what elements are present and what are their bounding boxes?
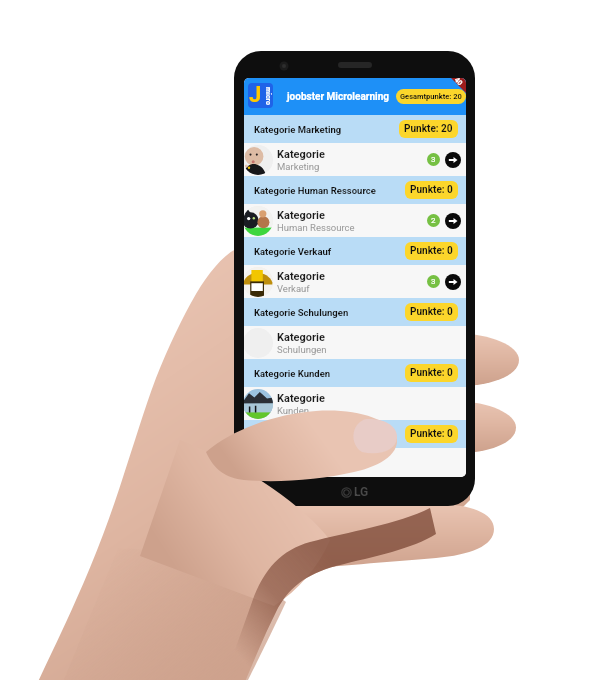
staticText: Verkauf (277, 283, 310, 294)
staticText: micro (264, 87, 272, 105)
staticText: Punkte: 0 (410, 306, 453, 318)
button[interactable]: Kategorie (244, 265, 466, 298)
button[interactable]: Open Marketing (445, 152, 461, 168)
button[interactable]: joobster logo (248, 83, 273, 108)
button[interactable]: Open Human Ressource (445, 213, 461, 229)
button[interactable]: Punkte: 0 (405, 425, 458, 443)
button[interactable]: Kategorie (244, 448, 466, 477)
staticText: Human Ressource (277, 222, 355, 233)
button[interactable]: Kategorie (244, 387, 466, 420)
button[interactable]: Kategorie (244, 204, 466, 237)
staticText: Kategorie Sonstiges (254, 429, 341, 440)
staticText: J (249, 83, 262, 107)
staticText: 40 (452, 78, 464, 88)
staticText: Kunden (277, 405, 309, 416)
staticText: joobster Microlearning (287, 91, 389, 103)
staticText: Kategorie Kunden (254, 368, 331, 379)
staticText: Kategorie (277, 392, 325, 405)
staticText: Kategorie Human Ressource (254, 185, 376, 196)
staticText: Kategorie (277, 451, 325, 464)
staticText: Punkte: 0 (410, 245, 453, 257)
button[interactable]: Kategorie (244, 326, 466, 359)
staticText: 3 (431, 277, 436, 286)
button[interactable]: Punkte: 0 (405, 364, 458, 382)
staticText: Schulungen (277, 344, 327, 355)
staticText: Punkte: 0 (410, 184, 453, 196)
staticText: Kategorie (277, 148, 325, 161)
staticText: Punkte: 0 (410, 367, 453, 379)
button[interactable]: Punkte: 0 (405, 242, 458, 260)
button[interactable]: Kategorie Kunden (244, 359, 466, 387)
button[interactable]: Punkte: 20 (399, 120, 458, 138)
button[interactable]: Kategorie Human Ressource (244, 176, 466, 204)
staticText: Kategorie Verkauf (254, 246, 332, 257)
staticText: 3 (431, 155, 436, 164)
button[interactable]: Kategorie Sonstiges (244, 420, 466, 448)
staticText: Sonstiges (277, 464, 319, 475)
staticText: 2 (431, 216, 436, 225)
staticText: Kategorie (277, 209, 325, 222)
staticText: Kategorie (277, 331, 325, 344)
button[interactable]: Punkte: 0 (405, 181, 458, 199)
button[interactable]: Kategorie Marketing (244, 115, 466, 143)
staticText: Punkte: 0 (410, 428, 453, 440)
button[interactable]: Kategorie Verkauf (244, 237, 466, 265)
staticText: Gesamtpunkte: 20 (400, 92, 462, 101)
button[interactable]: Punkte: 0 (405, 303, 458, 321)
staticText: Kategorie Marketing (254, 124, 342, 135)
button[interactable]: Kategorie Schulungen (244, 298, 466, 326)
button[interactable]: Gesamtpunkte: 20 (396, 89, 466, 104)
staticText: Marketing (277, 161, 320, 172)
staticText: LG (354, 485, 369, 499)
staticText: Kategorie Schulungen (254, 307, 349, 318)
button[interactable]: Open Verkauf (445, 274, 461, 290)
staticText: Kategorie (277, 270, 325, 283)
staticText: Punkte: 20 (404, 123, 453, 135)
button[interactable]: Kategorie (244, 143, 466, 176)
